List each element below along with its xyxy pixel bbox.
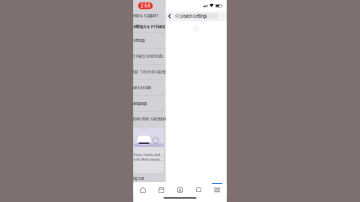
staticText: News from Facebook (131, 117, 167, 121)
staticText: Enjoy clarity and distance (133, 153, 164, 157)
button[interactable]: Help & Support (133, 10, 166, 21)
staticText: Dark Mode (131, 85, 151, 90)
staticText: Language (131, 101, 147, 106)
staticText: Your Time on Facebook (131, 70, 172, 74)
button[interactable]: Your Time on Facebook (133, 64, 166, 80)
button[interactable]: Marketplace (152, 183, 171, 196)
button[interactable]: Settings (133, 33, 166, 48)
button[interactable]: Menu (208, 183, 226, 196)
staticText: Settings (131, 38, 145, 43)
button[interactable]: Settings & Privacy (133, 21, 166, 33)
staticText: Search Settings (180, 14, 207, 19)
staticText: 2:58 (140, 3, 150, 8)
button[interactable]: Notifications (189, 183, 208, 196)
staticText: Log Out (131, 176, 144, 181)
staticText: Privacy Shortcuts (131, 54, 163, 59)
staticText: Settings & Privacy (131, 24, 165, 29)
button[interactable]: Language (133, 96, 166, 111)
button[interactable]: Log Out (133, 173, 166, 184)
button[interactable]: Dark Mode (133, 80, 166, 95)
button[interactable]: Profile (171, 183, 189, 196)
button[interactable]: Home (133, 183, 152, 196)
staticText: with Meta headsets. (133, 158, 164, 162)
button[interactable]: News from Facebook (133, 111, 166, 127)
button[interactable]: Privacy Shortcuts (133, 49, 166, 64)
staticText: Help & Support (131, 13, 158, 18)
button[interactable]: Back (166, 12, 174, 21)
button[interactable]: Meta headsets promo (134, 127, 165, 173)
